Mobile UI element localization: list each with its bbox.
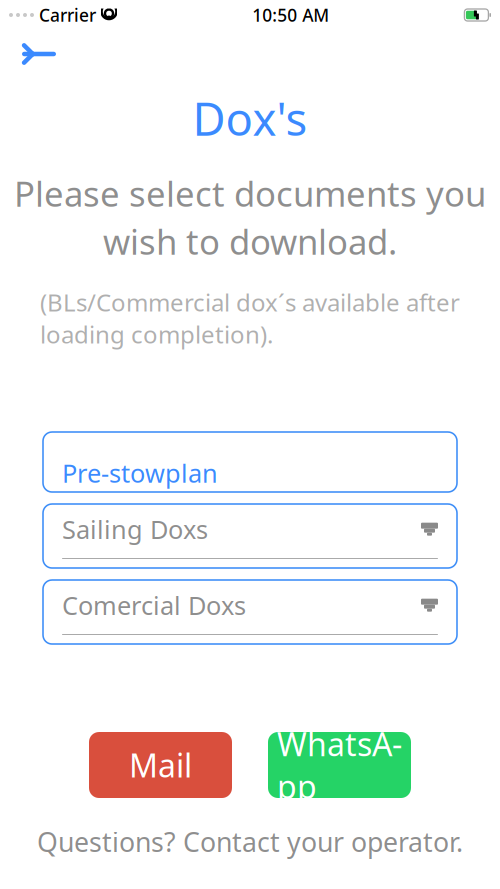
staticText: Dox's — [192, 88, 307, 148]
staticText: 10:50 AM — [252, 3, 329, 26]
button[interactable]: Mail — [89, 732, 232, 798]
staticText: Pre-stowplan — [62, 456, 218, 490]
staticText: wish to download. — [103, 218, 397, 264]
staticText: Carrier — [39, 3, 96, 26]
button[interactable]: Pre-stowplan — [43, 432, 457, 492]
staticText: WhatsApp — [277, 722, 402, 807]
staticText: (BLs/Commercial dox´s available after lo… — [40, 286, 460, 350]
button[interactable]: Comercial Doxs — [43, 580, 457, 644]
button[interactable]: WhatsApp — [268, 732, 411, 798]
staticText: Sailing Doxs — [62, 512, 208, 546]
button[interactable]: Back — [12, 32, 66, 76]
button[interactable]: Sailing Doxs — [43, 504, 457, 568]
staticText: Comercial Doxs — [62, 588, 246, 622]
staticText: Questions? Contact your operator. — [37, 824, 463, 859]
staticText: Please select documents you — [14, 170, 486, 216]
staticText: Mail — [129, 744, 192, 786]
